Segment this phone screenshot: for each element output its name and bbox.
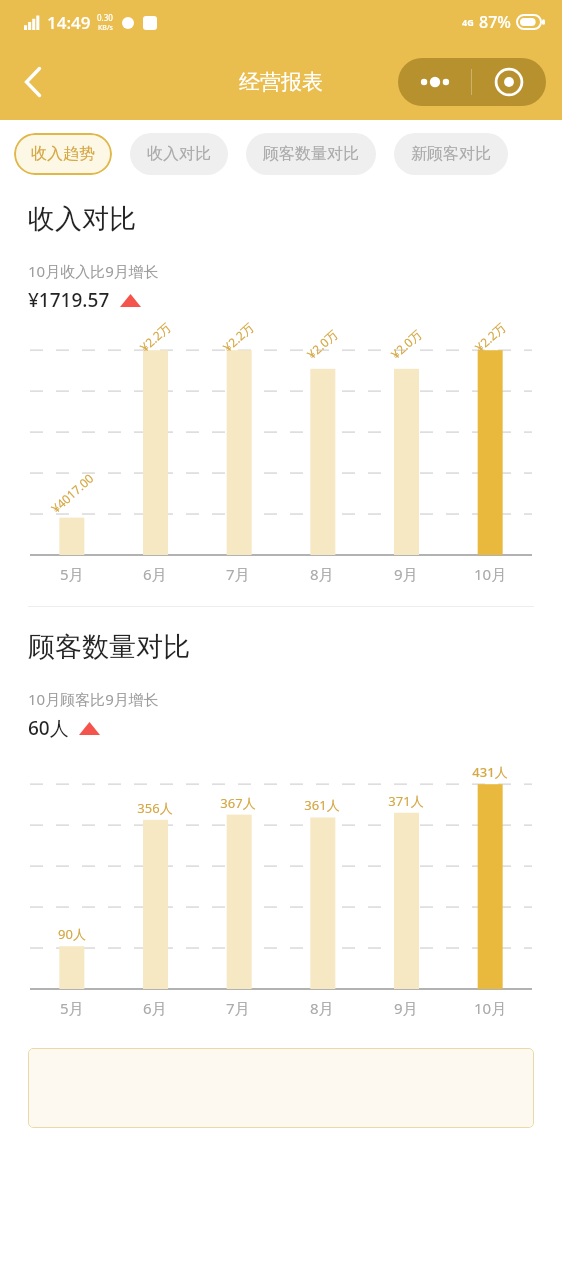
- staticText: 87%: [479, 11, 511, 33]
- staticText: 新顾客对比: [411, 144, 491, 164]
- button[interactable]: 顾客数量对比: [246, 133, 376, 175]
- button[interactable]: 收入趋势: [14, 133, 112, 175]
- staticText: 收入对比: [147, 144, 211, 164]
- staticText: 371人: [388, 792, 424, 810]
- staticText: 0.30: [97, 12, 113, 23]
- button[interactable]: 新顾客对比: [394, 133, 508, 175]
- staticText: 361人: [304, 796, 340, 814]
- staticText: 9月: [394, 564, 418, 584]
- staticText: ¥2.0万: [387, 326, 425, 362]
- staticText: 431人: [472, 763, 508, 781]
- staticText: 7月: [226, 998, 250, 1018]
- button[interactable]: [28, 1048, 534, 1128]
- button[interactable]: Mini program menu: [472, 58, 546, 106]
- button[interactable]: 收入对比: [130, 133, 228, 175]
- button[interactable]: Back: [8, 57, 58, 107]
- staticText: ¥2.2万: [136, 319, 174, 355]
- button[interactable]: More options: [398, 58, 471, 106]
- staticText: 顾客数量对比: [263, 144, 359, 164]
- staticText: 顾客数量对比: [28, 630, 190, 664]
- staticText: 4G: [462, 16, 474, 28]
- staticText: 367人: [220, 794, 256, 812]
- staticText: ¥1719.57: [28, 287, 110, 313]
- staticText: 7月: [226, 564, 250, 584]
- staticText: 90人: [58, 925, 86, 943]
- staticText: 6月: [143, 998, 167, 1018]
- staticText: 8月: [310, 998, 334, 1018]
- staticText: 60人: [28, 715, 69, 741]
- staticText: KB/s: [98, 23, 113, 33]
- staticText: 10月顾客比9月增长: [28, 689, 159, 709]
- staticText: 10月: [474, 564, 507, 584]
- staticText: 5月: [60, 998, 84, 1018]
- staticText: 5月: [60, 564, 84, 584]
- staticText: 8月: [310, 564, 334, 584]
- staticText: 6月: [143, 564, 167, 584]
- staticText: ¥2.0万: [303, 326, 341, 362]
- staticText: 收入对比: [28, 202, 136, 236]
- staticText: 10月: [474, 998, 507, 1018]
- staticText: 9月: [394, 998, 418, 1018]
- staticText: 经营报表: [239, 69, 323, 95]
- staticText: ¥2.2万: [471, 319, 509, 355]
- staticText: ¥4017.00: [47, 470, 97, 516]
- staticText: ¥2.2万: [219, 319, 257, 355]
- staticText: 10月收入比9月增长: [28, 261, 159, 281]
- staticText: 356人: [137, 799, 173, 817]
- staticText: 14:49: [47, 11, 91, 34]
- staticText: 收入趋势: [31, 144, 95, 164]
